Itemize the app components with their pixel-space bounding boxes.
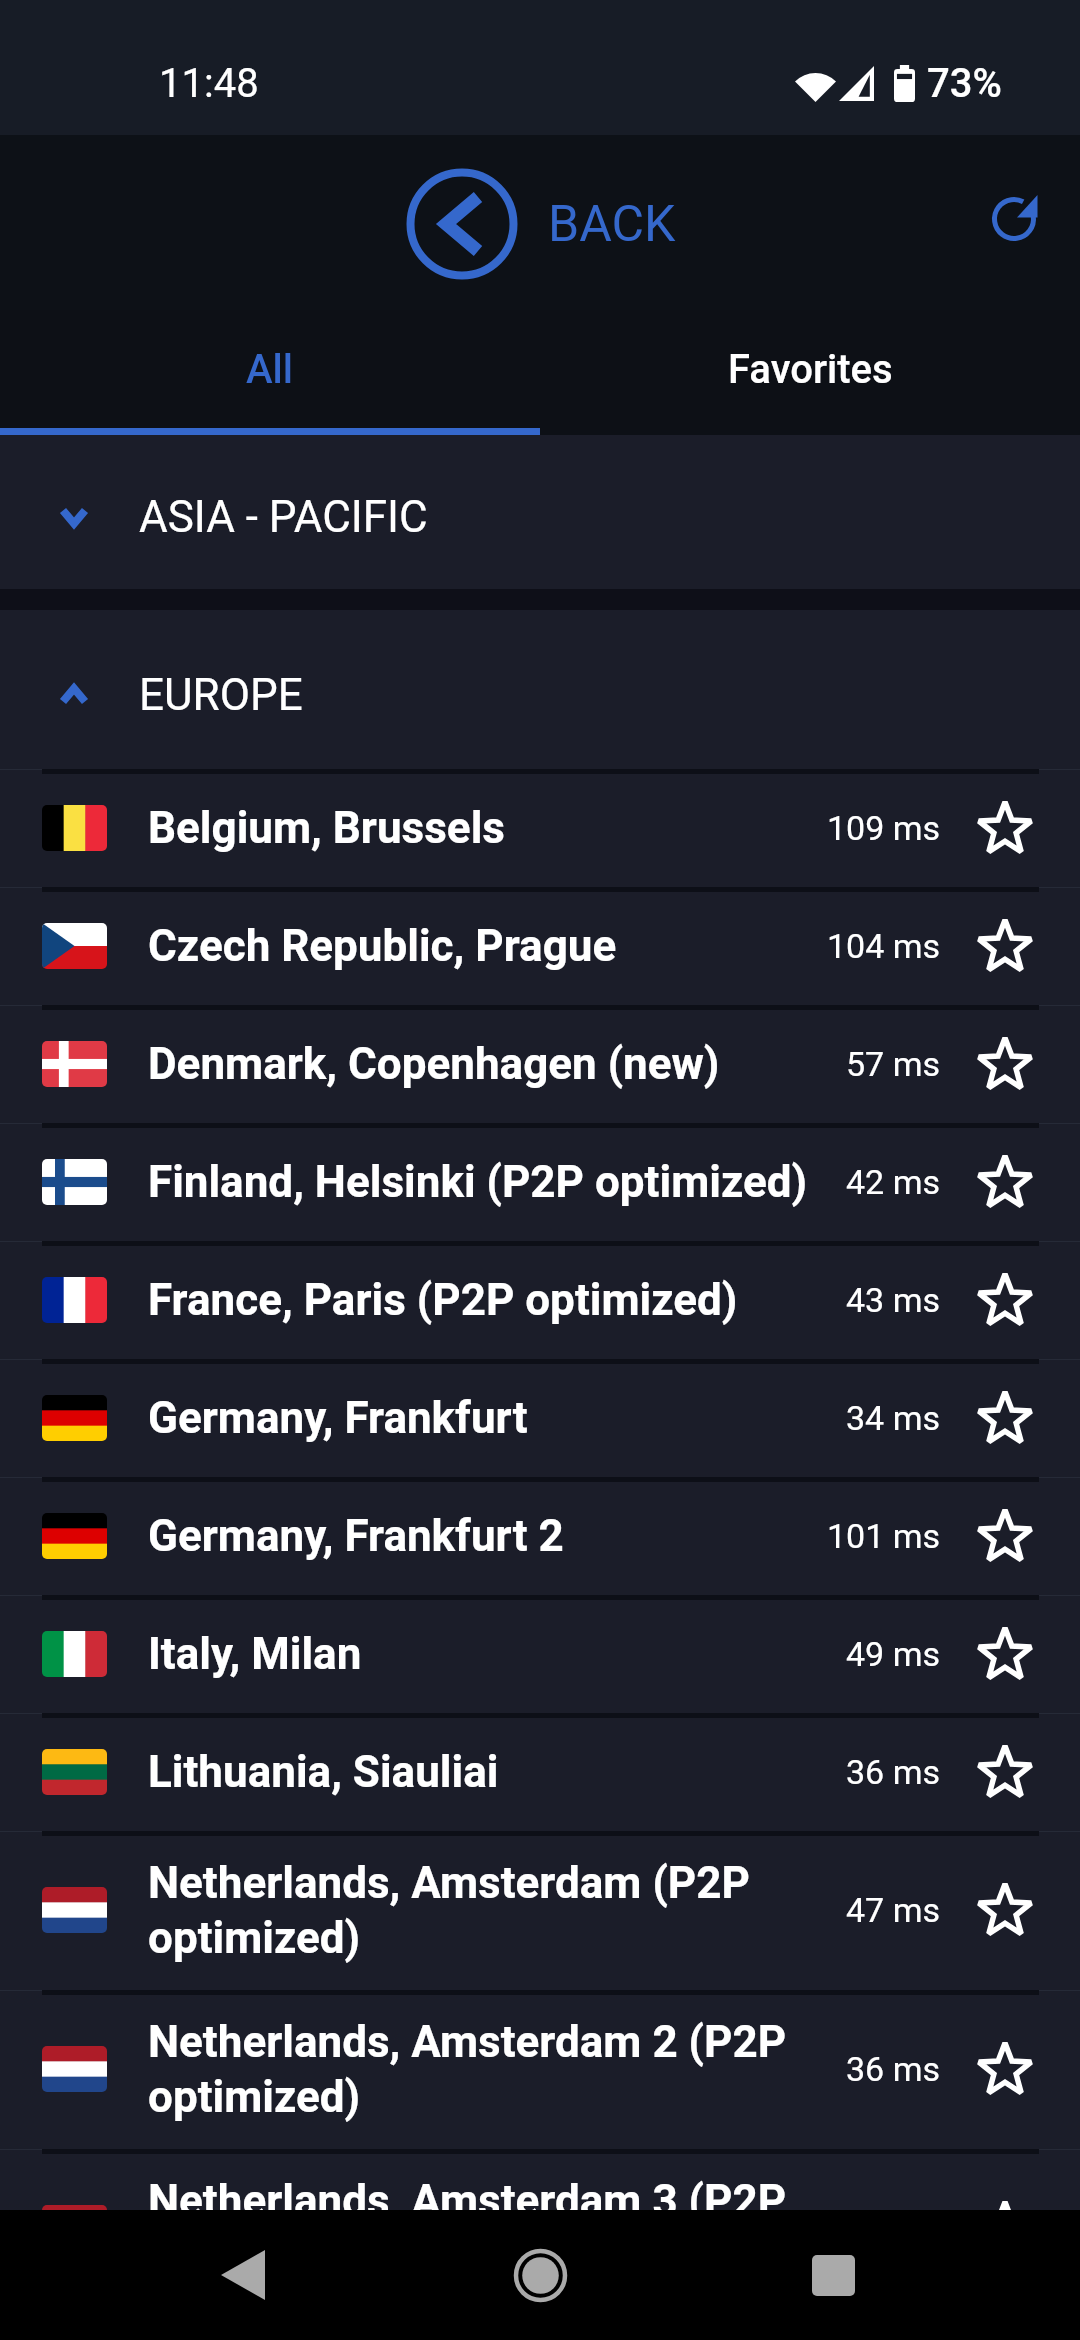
staticText: Finland, Helsinki (P2P optimized) — [148, 1156, 824, 1208]
staticText: 36 ms — [846, 1752, 941, 1792]
staticText: ASIA - PACIFIC — [139, 491, 428, 543]
staticText: Czech Republic, Prague — [148, 920, 805, 972]
staticText: 109 ms — [827, 808, 941, 848]
button[interactable]: EUROPE — [0, 610, 1080, 769]
button[interactable]: Favorite — [969, 792, 1041, 864]
staticText: Germany, Frankfurt — [148, 1392, 824, 1444]
button[interactable]: Netherlands, Amsterdam 3 (P2P optimized) — [0, 2149, 1080, 2308]
button[interactable]: Favorites — [540, 310, 1080, 428]
button[interactable]: Favorite — [969, 1264, 1041, 1336]
staticText: Favorites — [728, 346, 893, 393]
staticText: France, Paris (P2P optimized) — [148, 1274, 824, 1326]
button[interactable]: Favorite — [969, 1736, 1041, 1808]
button[interactable]: Czech Republic, Prague — [0, 887, 1080, 1005]
button[interactable]: Germany, Frankfurt 2 — [0, 1477, 1080, 1595]
staticText: 101 ms — [827, 1516, 941, 1556]
staticText: Germany, Frankfurt 2 — [148, 1510, 805, 1562]
button[interactable]: Germany, Frankfurt — [0, 1359, 1080, 1477]
staticText: 36 ms — [846, 2208, 941, 2248]
staticText: All — [246, 346, 294, 393]
button[interactable]: Favorite — [969, 1028, 1041, 1100]
button[interactable]: ASIA - PACIFIC — [0, 435, 1080, 589]
button[interactable]: Favorite — [969, 1146, 1041, 1218]
staticText: 57 ms — [846, 1044, 941, 1084]
staticText: 11:48 — [159, 60, 259, 107]
button[interactable]: Italy, Milan — [0, 1595, 1080, 1713]
staticText: EUROPE — [139, 669, 303, 721]
staticText: Lithuania, Siauliai — [148, 1746, 824, 1798]
staticText: BACK — [548, 195, 676, 254]
button[interactable]: Denmark, Copenhagen (new) — [0, 1005, 1080, 1123]
button[interactable]: Favorite — [969, 1500, 1041, 1572]
button[interactable]: Favorite — [969, 1618, 1041, 1690]
button[interactable]: Netherlands, Amsterdam (P2P optimized) — [0, 1831, 1080, 1990]
button[interactable]: Belgium, Brussels — [0, 769, 1080, 887]
staticText: Italy, Milan — [148, 1628, 824, 1680]
staticText: 34 ms — [846, 1398, 941, 1438]
button[interactable]: Lithuania, Siauliai — [0, 1713, 1080, 1831]
staticText: 104 ms — [827, 926, 941, 966]
button[interactable]: BACK — [402, 164, 676, 284]
button[interactable]: Finland, Helsinki (P2P optimized) — [0, 1123, 1080, 1241]
staticText: 49 ms — [846, 1634, 941, 1674]
button[interactable]: Netherlands, Amsterdam 2 (P2P optimized) — [0, 1990, 1080, 2149]
staticText: 42 ms — [846, 1162, 941, 1202]
staticText: 43 ms — [846, 1280, 941, 1320]
button[interactable]: Favorite — [969, 2192, 1041, 2264]
staticText: 47 ms — [846, 1890, 941, 1930]
staticText: Netherlands, Amsterdam (P2P optimized) — [148, 1857, 824, 1964]
staticText: Denmark, Copenhagen (new) — [148, 1038, 824, 1090]
staticText: Belgium, Brussels — [148, 802, 805, 854]
button[interactable]: All — [0, 310, 540, 428]
button[interactable]: Home — [480, 2224, 600, 2326]
button[interactable]: Recents — [773, 2224, 893, 2326]
button[interactable]: Favorite — [969, 1382, 1041, 1454]
button[interactable]: Refresh — [969, 174, 1059, 264]
button[interactable]: Back — [183, 2224, 303, 2326]
button[interactable]: Favorite — [969, 2033, 1041, 2105]
staticText: Netherlands, Amsterdam 3 (P2P optimized) — [148, 2175, 824, 2282]
staticText: Netherlands, Amsterdam 2 (P2P optimized) — [148, 2016, 824, 2123]
staticText: 73% — [927, 60, 1002, 107]
button[interactable]: Favorite — [969, 1874, 1041, 1946]
button[interactable]: France, Paris (P2P optimized) — [0, 1241, 1080, 1359]
staticText: 36 ms — [846, 2049, 941, 2089]
button[interactable]: Favorite — [969, 910, 1041, 982]
